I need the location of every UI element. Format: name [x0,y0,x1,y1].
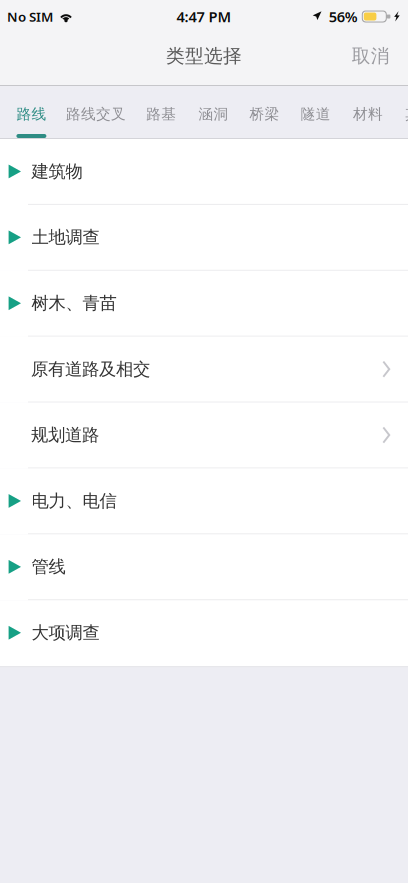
button[interactable]: 材料 [342,86,394,138]
staticText: 大项调查 [31,622,99,643]
staticText: No SIM [7,8,53,25]
staticText: 路线交叉 [66,105,126,123]
button[interactable]: 电力、电信 [0,468,408,534]
button[interactable]: 建筑物 [0,139,408,205]
staticText: 电力、电信 [31,490,116,512]
button[interactable]: 土地调查 [0,205,408,271]
button[interactable]: 桥梁 [239,86,290,138]
staticText: 取消 [352,44,390,67]
button[interactable]: 其他 [394,86,408,138]
staticText: 建筑物 [31,161,82,182]
staticText: 管线 [31,556,65,577]
staticText: 原有道路及相交 [31,358,150,380]
staticText: 涵洞 [198,105,228,123]
staticText: 4:47 PM [176,7,231,26]
staticText: 材料 [353,105,383,123]
staticText: 路线 [16,105,46,123]
button[interactable]: 规划道路 [0,403,408,468]
button[interactable]: 管线 [0,534,408,600]
staticText: 56% [329,7,358,26]
button[interactable]: 路线 [6,86,57,138]
button[interactable]: 路基 [135,86,188,138]
staticText: 规划道路 [31,424,99,446]
staticText: 土地调查 [31,227,99,248]
button[interactable]: 树木、青苗 [0,271,408,337]
staticText: 隧道 [301,105,331,123]
button[interactable]: 隧道 [290,86,342,138]
button[interactable]: 大项调查 [0,600,408,666]
button[interactable]: 路线交叉 [57,86,135,138]
staticText: 其他 [405,105,408,123]
staticText: 桥梁 [249,105,279,123]
button[interactable]: 取消 [328,33,408,79]
staticText: 类型选择 [166,44,242,67]
staticText: 路基 [146,105,176,123]
button[interactable]: 涵洞 [188,86,239,138]
staticText: 树木、青苗 [31,293,116,314]
button[interactable]: 原有道路及相交 [0,337,408,403]
